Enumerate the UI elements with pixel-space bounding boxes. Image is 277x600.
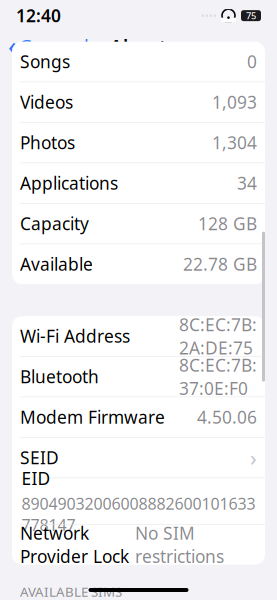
staticText: Capacity (20, 212, 89, 235)
staticText: 75 (246, 9, 256, 22)
staticText: EID (21, 467, 50, 490)
staticText: Modem Firmware (20, 406, 165, 429)
button[interactable]: ‹ (0, 32, 97, 60)
staticText: 1,093 (212, 91, 257, 114)
staticText: › (250, 443, 257, 472)
button[interactable]: SEID (12, 438, 265, 478)
staticText: Songs (20, 50, 70, 73)
staticText: ‹ (8, 28, 17, 63)
staticText: 8C:EC:7B:37:0E:F0 (179, 354, 257, 400)
staticText: Available (20, 253, 93, 276)
staticText: Videos (20, 91, 73, 114)
staticText: 89049032006008882600101633778147 (21, 493, 255, 535)
staticText: 34 (237, 172, 257, 195)
staticText: 22.78 GB (183, 253, 257, 276)
staticText: 4.50.06 (197, 406, 257, 429)
staticText: 128 GB (198, 212, 257, 235)
staticText: General (19, 33, 89, 58)
staticText: About (110, 33, 167, 58)
staticText: Photos (20, 131, 75, 154)
staticText: SEID (20, 446, 59, 469)
staticText: Wi-Fi Address (20, 325, 130, 348)
staticText: 1,304 (212, 131, 257, 154)
staticText: 12:40 (16, 4, 61, 27)
staticText: Network Provider Lock (20, 522, 129, 568)
staticText: No SIM restrictions (135, 522, 224, 568)
staticText: 8C:EC:7B:2A:DE:75 (179, 313, 257, 359)
staticText: 0 (247, 50, 257, 73)
staticText: Bluetooth (20, 365, 99, 388)
staticText: Applications (20, 172, 118, 195)
staticText: AVAILABLE SIMS (20, 583, 122, 600)
